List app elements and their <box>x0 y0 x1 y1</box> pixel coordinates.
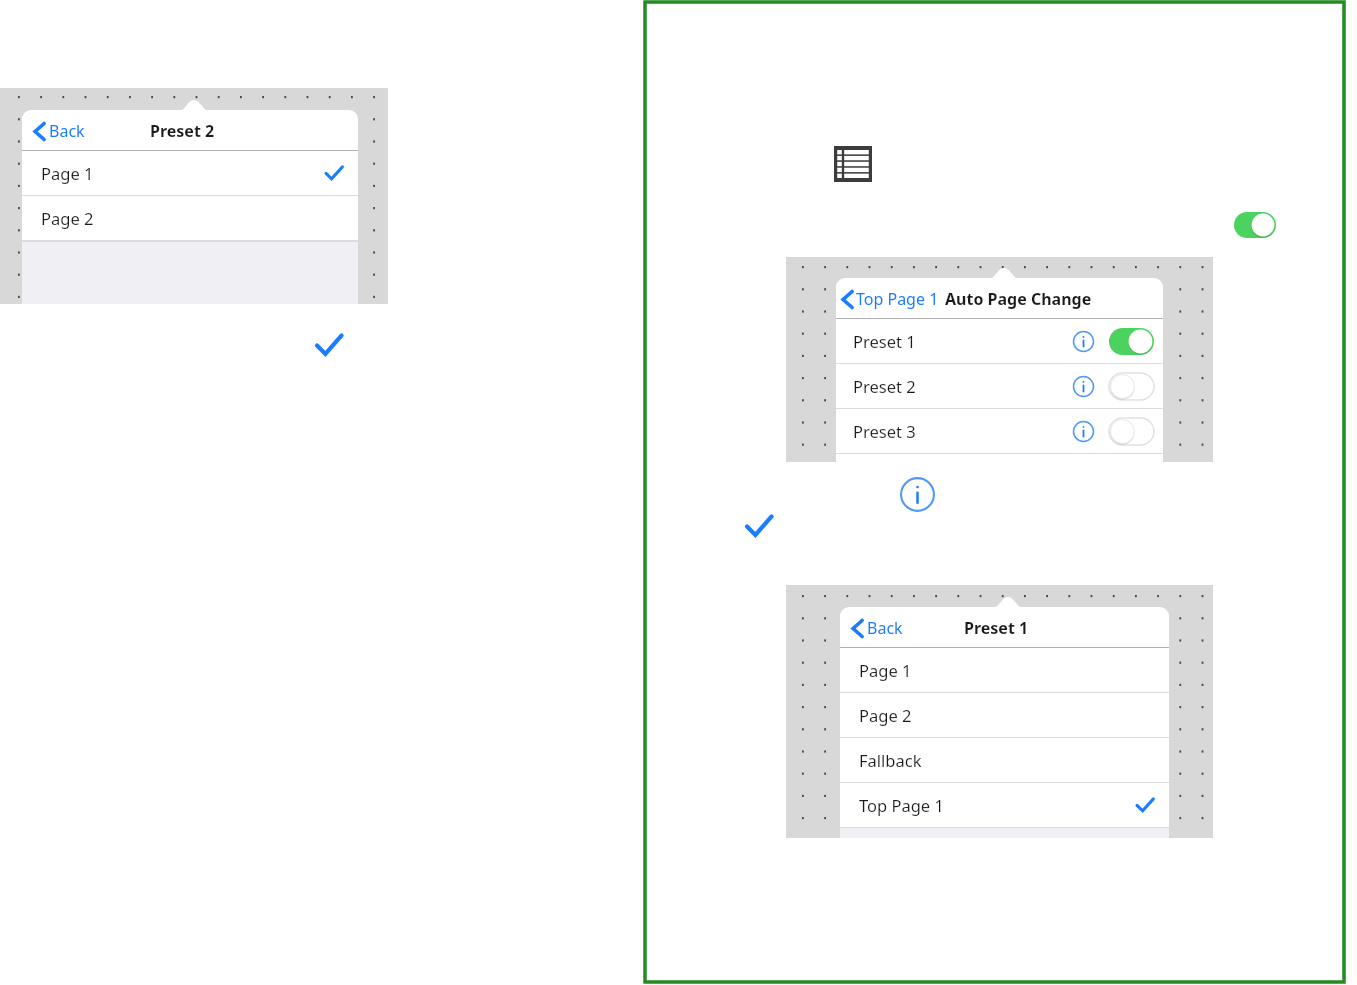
staticText: Preset 1 <box>853 330 916 352</box>
staticText: Auto Page Change <box>945 288 1092 310</box>
staticText: Top Page 1 <box>856 288 939 310</box>
button[interactable]: Information <box>1072 330 1095 353</box>
button[interactable]: List <box>834 146 872 182</box>
button[interactable]: Information <box>1072 420 1095 443</box>
button[interactable]: Page 1 <box>840 648 1169 692</box>
button[interactable]: Page 2 <box>840 693 1169 737</box>
staticText: Top Page 1 <box>859 794 944 816</box>
staticText: Page 2 <box>859 704 912 726</box>
other: Selected <box>744 512 774 540</box>
button[interactable]: Preset 1 <box>836 319 1163 363</box>
staticText: Page 1 <box>41 162 94 184</box>
staticText: Back <box>867 617 903 639</box>
button[interactable]: Toggle off <box>1109 373 1154 400</box>
staticText: Back <box>49 120 85 142</box>
staticText: Page 2 <box>41 207 94 229</box>
button[interactable]: Toggle off <box>1109 418 1154 445</box>
button[interactable]: Preset 3 <box>836 409 1163 453</box>
staticText: Preset 2 <box>853 375 916 397</box>
button[interactable]: Page 1 <box>22 151 358 195</box>
staticText: Preset 3 <box>853 420 916 442</box>
button[interactable]: Information <box>899 476 936 513</box>
staticText: Preset 2 <box>150 120 215 142</box>
button[interactable]: Top Page 1 <box>840 284 1094 314</box>
staticText: Fallback <box>859 749 922 771</box>
button[interactable]: Toggle on <box>1234 212 1276 238</box>
button[interactable]: Back <box>848 613 907 643</box>
button[interactable]: Fallback <box>840 738 1169 782</box>
button[interactable]: Back <box>30 116 89 146</box>
staticText: Preset 1 <box>964 617 1029 639</box>
staticText: Page 1 <box>859 659 912 681</box>
button[interactable]: Page 2 <box>22 196 358 240</box>
other: Selected <box>314 331 344 359</box>
button[interactable]: Top Page 1 <box>840 783 1169 827</box>
button[interactable]: Information <box>1072 375 1095 398</box>
button[interactable]: Toggle on <box>1109 328 1154 355</box>
button[interactable]: Preset 2 <box>836 364 1163 408</box>
